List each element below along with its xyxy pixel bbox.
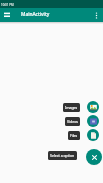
staticText: MainActivity	[21, 11, 50, 18]
button[interactable]: Files	[87, 129, 99, 141]
staticText: Videos	[67, 119, 78, 124]
button[interactable]: Videos	[65, 117, 80, 126]
button[interactable]: Menu	[0, 8, 14, 22]
button[interactable]: Close menu	[86, 149, 102, 165]
staticText: 10:01 PM	[1, 3, 14, 7]
button[interactable]: Images	[87, 101, 99, 113]
button[interactable]: Videos	[87, 115, 99, 127]
button[interactable]: Select a option	[48, 151, 77, 160]
button[interactable]: Files	[68, 131, 80, 140]
staticText: Select a option	[50, 153, 75, 158]
button[interactable]: Images	[63, 103, 80, 112]
button[interactable]: More options	[89, 8, 103, 22]
staticText: Files	[70, 133, 78, 138]
staticText: Images	[65, 105, 78, 110]
